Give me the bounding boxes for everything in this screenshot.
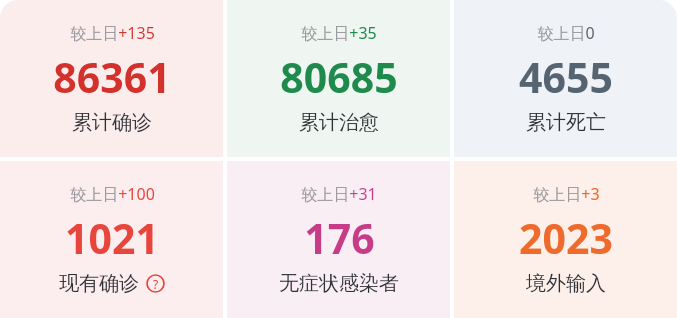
staticText: 累计确诊: [72, 110, 152, 135]
button[interactable]: 较上日+100: [0, 161, 223, 318]
staticText: 较上日+100: [70, 183, 155, 205]
button[interactable]: 较上日+3: [454, 161, 677, 318]
staticText: ?: [153, 276, 159, 292]
button[interactable]: 较上日+31: [227, 161, 450, 318]
staticText: 80685: [280, 49, 398, 105]
staticText: 较上日+31: [301, 183, 377, 205]
staticText: 现有确诊: [59, 271, 139, 296]
button[interactable]: 较上日0: [454, 0, 677, 157]
staticText: 境外输入: [526, 271, 606, 296]
staticText: 176: [304, 210, 375, 266]
staticText: 较上日0: [537, 22, 595, 44]
staticText: 86361: [53, 49, 171, 105]
staticText: 较上日+135: [70, 22, 155, 44]
button[interactable]: 现有确诊 说明: [146, 274, 165, 293]
staticText: 2023: [519, 210, 613, 266]
button[interactable]: 较上日+35: [227, 0, 450, 157]
staticText: 4655: [519, 49, 613, 105]
staticText: 累计治愈: [299, 110, 379, 135]
staticText: 1021: [65, 210, 159, 266]
staticText: 无症状感染者: [279, 271, 399, 296]
staticText: 累计死亡: [526, 110, 606, 135]
button[interactable]: 较上日+135: [0, 0, 223, 157]
staticText: 较上日+35: [301, 22, 377, 44]
staticText: 较上日+3: [533, 183, 600, 205]
